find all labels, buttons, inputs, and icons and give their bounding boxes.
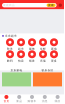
staticText: 更多 [51,59,57,63]
button[interactable]: 充值 [37,50,48,63]
staticText: 服饰 [29,47,35,51]
staticText: 新品 [16,100,22,103]
button[interactable]: 京东家电 [2,68,31,86]
button[interactable]: 秒杀 [4,38,15,51]
button[interactable]: Messages [59,3,62,7]
button[interactable]: 我的 [51,95,64,103]
button[interactable]: 数码 [4,50,15,63]
button[interactable]: 超市 [15,38,26,51]
staticText: 搜索 [48,4,54,7]
staticText: 消息 [42,100,48,103]
button[interactable]: 秒杀专区 [33,68,62,86]
button[interactable]: 生鲜 [37,38,48,51]
button[interactable]: 搜索商品 [2,3,57,7]
staticText: 充值 [40,59,46,63]
staticText: 超市 [18,47,24,51]
button[interactable]: 新品 [13,95,26,103]
staticText: 秒杀 [7,47,13,51]
staticText: 京东家电 [10,69,22,72]
staticText: 生鲜 [40,47,46,51]
button[interactable]: 拍卖 [15,50,26,63]
staticText: 家电 [51,47,57,51]
staticText: 领券 [29,59,35,63]
staticText: 首页 [3,100,9,103]
button[interactable]: 家电 [48,38,59,51]
button[interactable]: 消息 [38,95,51,103]
button[interactable]: 更多 [48,50,59,63]
staticText: 搜索商品 [3,4,15,7]
staticText: 数码 [7,59,13,63]
staticText: 购物车 [27,100,36,103]
staticText: 秒杀专区 [41,69,53,72]
staticText: 拍卖 [18,59,24,63]
staticText: 我的 [55,100,61,103]
button[interactable]: 领券 [26,50,37,63]
staticText: 京东超市 [5,34,17,38]
button[interactable]: 购物车 [26,95,38,103]
button[interactable]: 服饰 [26,38,37,51]
button[interactable]: 首页 [0,95,13,103]
